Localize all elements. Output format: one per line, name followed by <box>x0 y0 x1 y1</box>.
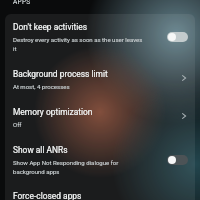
button[interactable]: Don't keep activities <box>167 32 188 42</box>
button[interactable] <box>5 100 195 128</box>
staticText: APPS <box>13 0 31 6</box>
staticText: Destroy every activity as soon as the us… <box>13 36 143 53</box>
staticText: Off <box>13 121 22 128</box>
button[interactable] <box>5 184 195 200</box>
button[interactable]: Background process limit <box>176 70 192 86</box>
staticText: At most, 4 processes <box>13 83 70 90</box>
staticText: Background process limit <box>13 69 108 79</box>
staticText: Memory optimization <box>13 107 93 117</box>
button[interactable] <box>5 138 195 176</box>
staticText: Force-closed apps <box>13 191 82 200</box>
button[interactable] <box>5 17 195 54</box>
button[interactable]: Show all ANRs <box>167 155 188 165</box>
button[interactable]: Memory optimization <box>176 108 192 124</box>
button[interactable] <box>5 62 195 90</box>
staticText: Don't keep activities <box>13 22 88 32</box>
staticText: Show all ANRs <box>13 145 68 155</box>
staticText: Show App Not Responding dialogue for bac… <box>13 159 119 176</box>
